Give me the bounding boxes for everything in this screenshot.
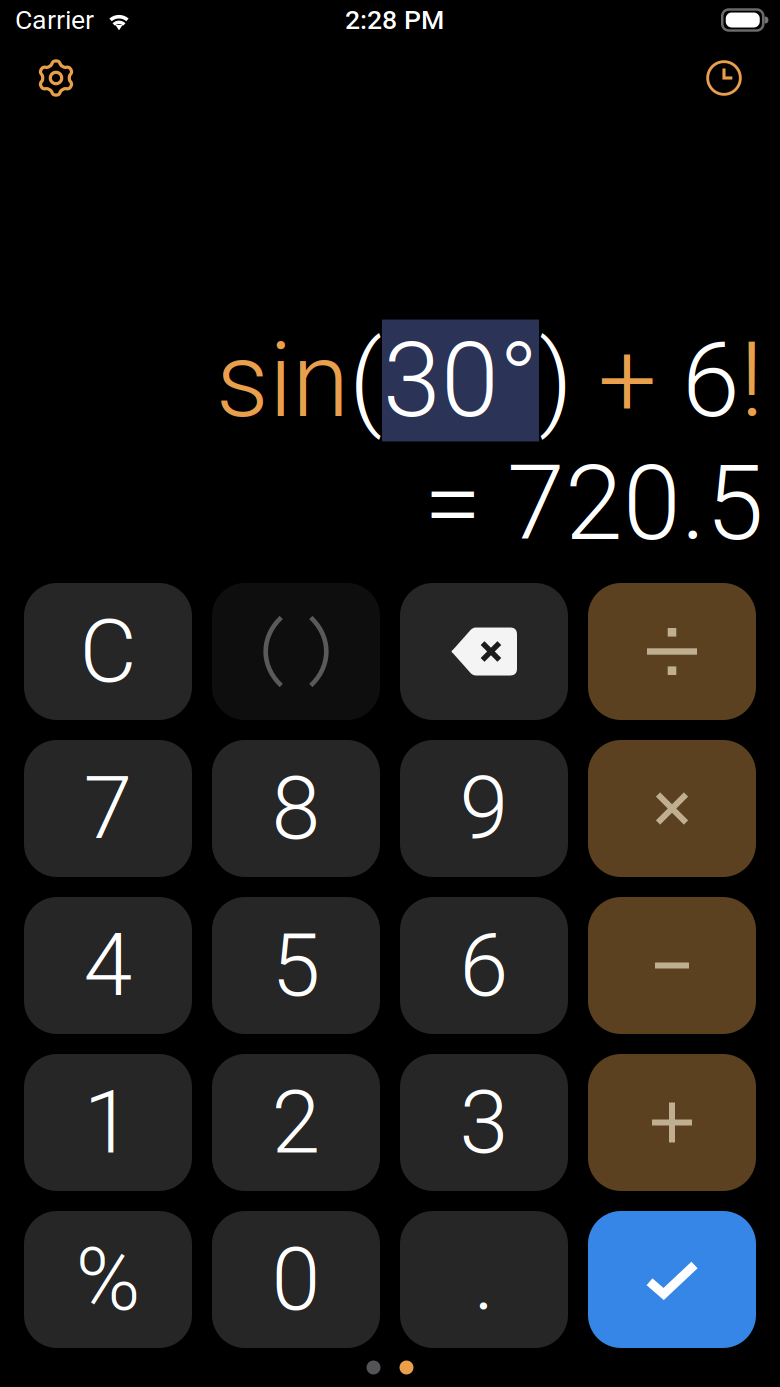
- staticText: 4: [83, 914, 132, 1017]
- button[interactable]: 2: [212, 1054, 380, 1191]
- staticText: (: [349, 320, 382, 441]
- button[interactable]: History: [690, 40, 758, 116]
- button[interactable]: 0: [212, 1211, 380, 1348]
- staticText: = 720.5: [424, 443, 764, 564]
- button[interactable]: 9: [400, 740, 568, 877]
- button[interactable]: 6: [400, 897, 568, 1034]
- button[interactable]: 1: [24, 1054, 192, 1191]
- button[interactable]: 7: [24, 740, 192, 877]
- button[interactable]: Parentheses: [212, 583, 380, 720]
- button[interactable]: Backspace: [400, 583, 568, 720]
- button[interactable]: 3: [400, 1054, 568, 1191]
- staticText: +: [573, 320, 682, 441]
- staticText: 7: [83, 757, 132, 860]
- staticText: Carrier: [15, 4, 94, 36]
- staticText: 2: [271, 1071, 320, 1174]
- button[interactable]: 5: [212, 897, 380, 1034]
- staticText: 30°: [383, 320, 538, 441]
- button[interactable]: 4: [24, 897, 192, 1034]
- staticText: 6: [459, 914, 508, 1017]
- button[interactable]: Multiply: [588, 740, 756, 877]
- button[interactable]: 8: [212, 740, 380, 877]
- staticText: 2:28 PM: [345, 4, 444, 36]
- staticText: %: [75, 1228, 140, 1331]
- button[interactable]: %: [24, 1211, 192, 1348]
- staticText: 3: [459, 1071, 508, 1174]
- staticText: ): [539, 320, 573, 441]
- button[interactable]: .: [400, 1211, 568, 1348]
- button[interactable]: Settings: [22, 40, 90, 116]
- button[interactable]: Plus: [588, 1054, 756, 1191]
- staticText: 6: [682, 320, 740, 441]
- button[interactable]: C: [24, 583, 192, 720]
- button[interactable]: Divide: [588, 583, 756, 720]
- staticText: 0: [271, 1228, 320, 1331]
- staticText: .: [473, 1228, 494, 1331]
- staticText: C: [79, 600, 136, 703]
- staticText: sin: [216, 320, 349, 441]
- staticText: 5: [271, 914, 320, 1017]
- staticText: 8: [271, 757, 320, 860]
- staticText: 9: [459, 757, 508, 860]
- button[interactable]: Equals: [588, 1211, 756, 1348]
- staticText: 1: [83, 1071, 132, 1174]
- staticText: !: [740, 320, 764, 441]
- button[interactable]: Minus: [588, 897, 756, 1034]
